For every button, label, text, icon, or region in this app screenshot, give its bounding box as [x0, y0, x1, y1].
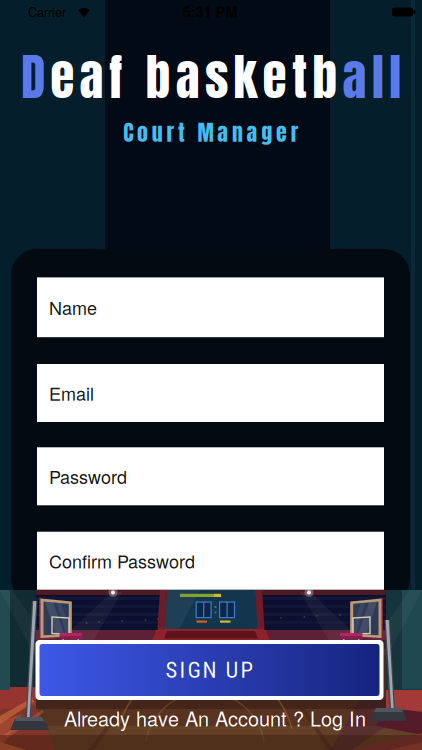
- staticText: D: [21, 40, 45, 114]
- staticText: f: [109, 40, 123, 114]
- button[interactable]: SIGN UP: [35, 640, 383, 700]
- button[interactable]: Name: [37, 277, 384, 337]
- staticText: n: [232, 116, 243, 149]
- staticText: o: [137, 116, 148, 149]
- staticText: l: [372, 40, 384, 114]
- staticText: e: [276, 116, 287, 149]
- staticText: Name: [49, 294, 97, 320]
- staticText: u: [152, 116, 163, 149]
- staticText: a: [79, 40, 103, 114]
- staticText: t: [292, 40, 307, 114]
- staticText: e: [50, 40, 74, 114]
- staticText: Already have An Account ? Log In: [64, 704, 366, 732]
- staticText: r: [291, 116, 299, 149]
- staticText: SIGN UP: [165, 657, 253, 683]
- staticText: s: [205, 40, 228, 114]
- staticText: 5:31 PM: [182, 1, 237, 22]
- staticText: a: [247, 116, 258, 149]
- staticText: Carrier: [28, 2, 66, 20]
- staticText: Password: [49, 463, 127, 489]
- staticText: a: [176, 40, 200, 114]
- staticText: M: [197, 116, 213, 149]
- staticText: Email: [49, 380, 94, 406]
- button[interactable]: Password: [37, 447, 384, 505]
- staticText: a: [217, 116, 228, 149]
- staticText: C: [123, 116, 133, 149]
- staticText: t: [178, 116, 185, 149]
- staticText: k: [233, 40, 257, 114]
- button[interactable]: Email: [37, 364, 384, 422]
- button[interactable]: Confirm Password: [37, 532, 384, 590]
- button[interactable]: Already have An Account ? Log In: [64, 704, 366, 732]
- staticText: b: [312, 40, 337, 114]
- staticText: a: [342, 40, 366, 114]
- staticText: b: [145, 40, 170, 114]
- staticText: l: [389, 40, 401, 114]
- staticText: Confirm Password: [49, 548, 195, 574]
- staticText: r: [166, 116, 174, 149]
- staticText: g: [261, 116, 272, 149]
- staticText: e: [263, 40, 287, 114]
